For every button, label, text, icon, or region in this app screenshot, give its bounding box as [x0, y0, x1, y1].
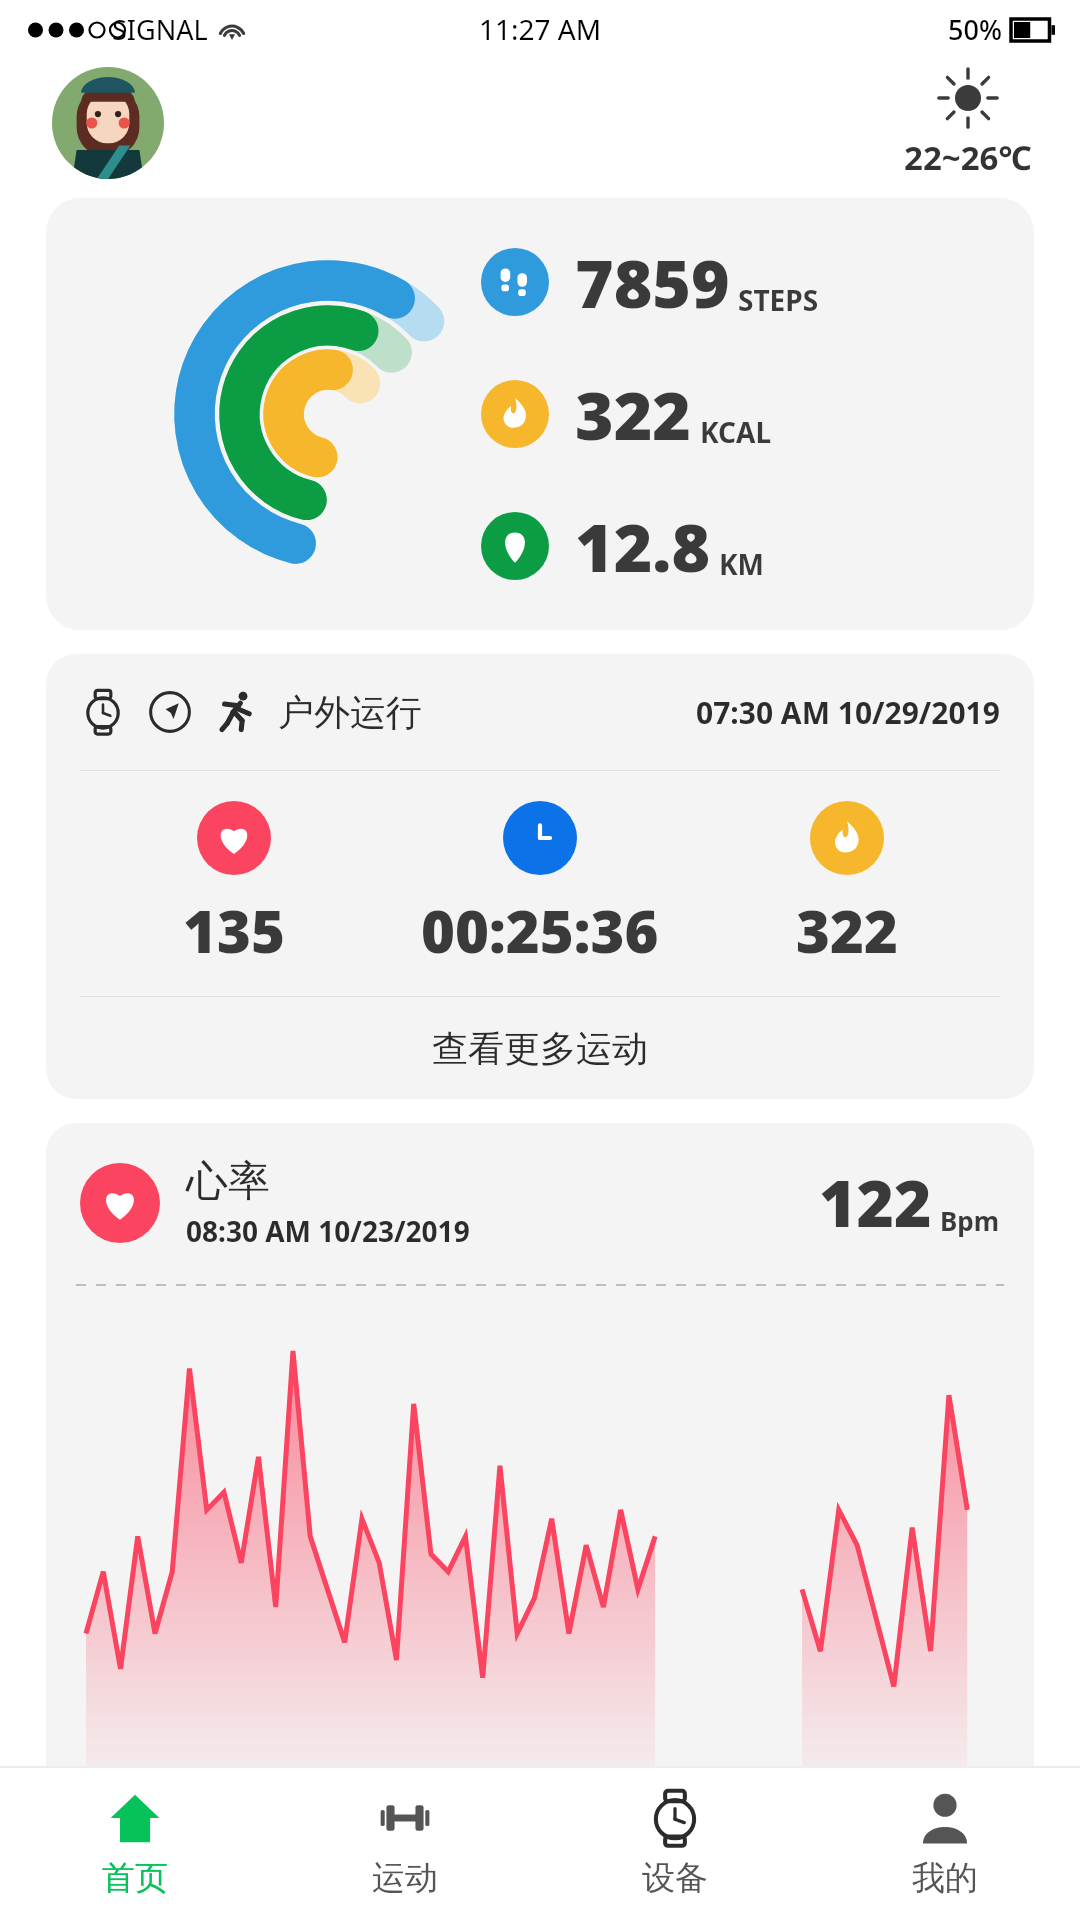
button[interactable]: 心率 [46, 1123, 1034, 1766]
staticText: SIGNAL [112, 11, 208, 48]
staticText: 322 [796, 891, 898, 970]
staticText: 08:30 AM 10/23/2019 [186, 1212, 470, 1250]
button[interactable]: 运动 [270, 1768, 540, 1920]
staticText: STEPS [738, 281, 819, 319]
staticText: 11:27 AM [479, 10, 602, 48]
staticText: 135 [183, 891, 285, 970]
staticText: Bpm [940, 1203, 1000, 1238]
button[interactable]: 户外运行 [46, 654, 1034, 1099]
staticText: 设备 [642, 1857, 708, 1899]
staticText: 户外运行 [278, 690, 422, 735]
button[interactable]: 我的 [810, 1768, 1080, 1920]
button[interactable]: 查看更多运动 [46, 997, 1034, 1099]
staticText: 00:25:36 [421, 891, 659, 970]
staticText: 07:30 AM 10/29/2019 [696, 692, 1000, 733]
staticText: KM [719, 545, 764, 583]
staticText: 50% [948, 11, 1002, 48]
staticText: 12.8 [575, 501, 711, 591]
staticText: 我的 [912, 1857, 978, 1899]
staticText: 首页 [102, 1857, 168, 1899]
button[interactable]: 7859 [46, 198, 1034, 630]
staticText: 运动 [372, 1857, 438, 1899]
staticText: 122 [819, 1159, 932, 1246]
button[interactable]: 设备 [540, 1768, 810, 1920]
staticText: 322 [575, 369, 692, 459]
button[interactable]: Profile [52, 67, 164, 179]
staticText: 查看更多运动 [432, 1026, 648, 1071]
staticText: 心率 [186, 1155, 270, 1208]
staticText: 7859 [575, 237, 730, 327]
staticText: 22~26℃ [904, 135, 1032, 180]
button[interactable]: 首页 [0, 1768, 270, 1920]
staticText: KCAL [700, 413, 772, 451]
